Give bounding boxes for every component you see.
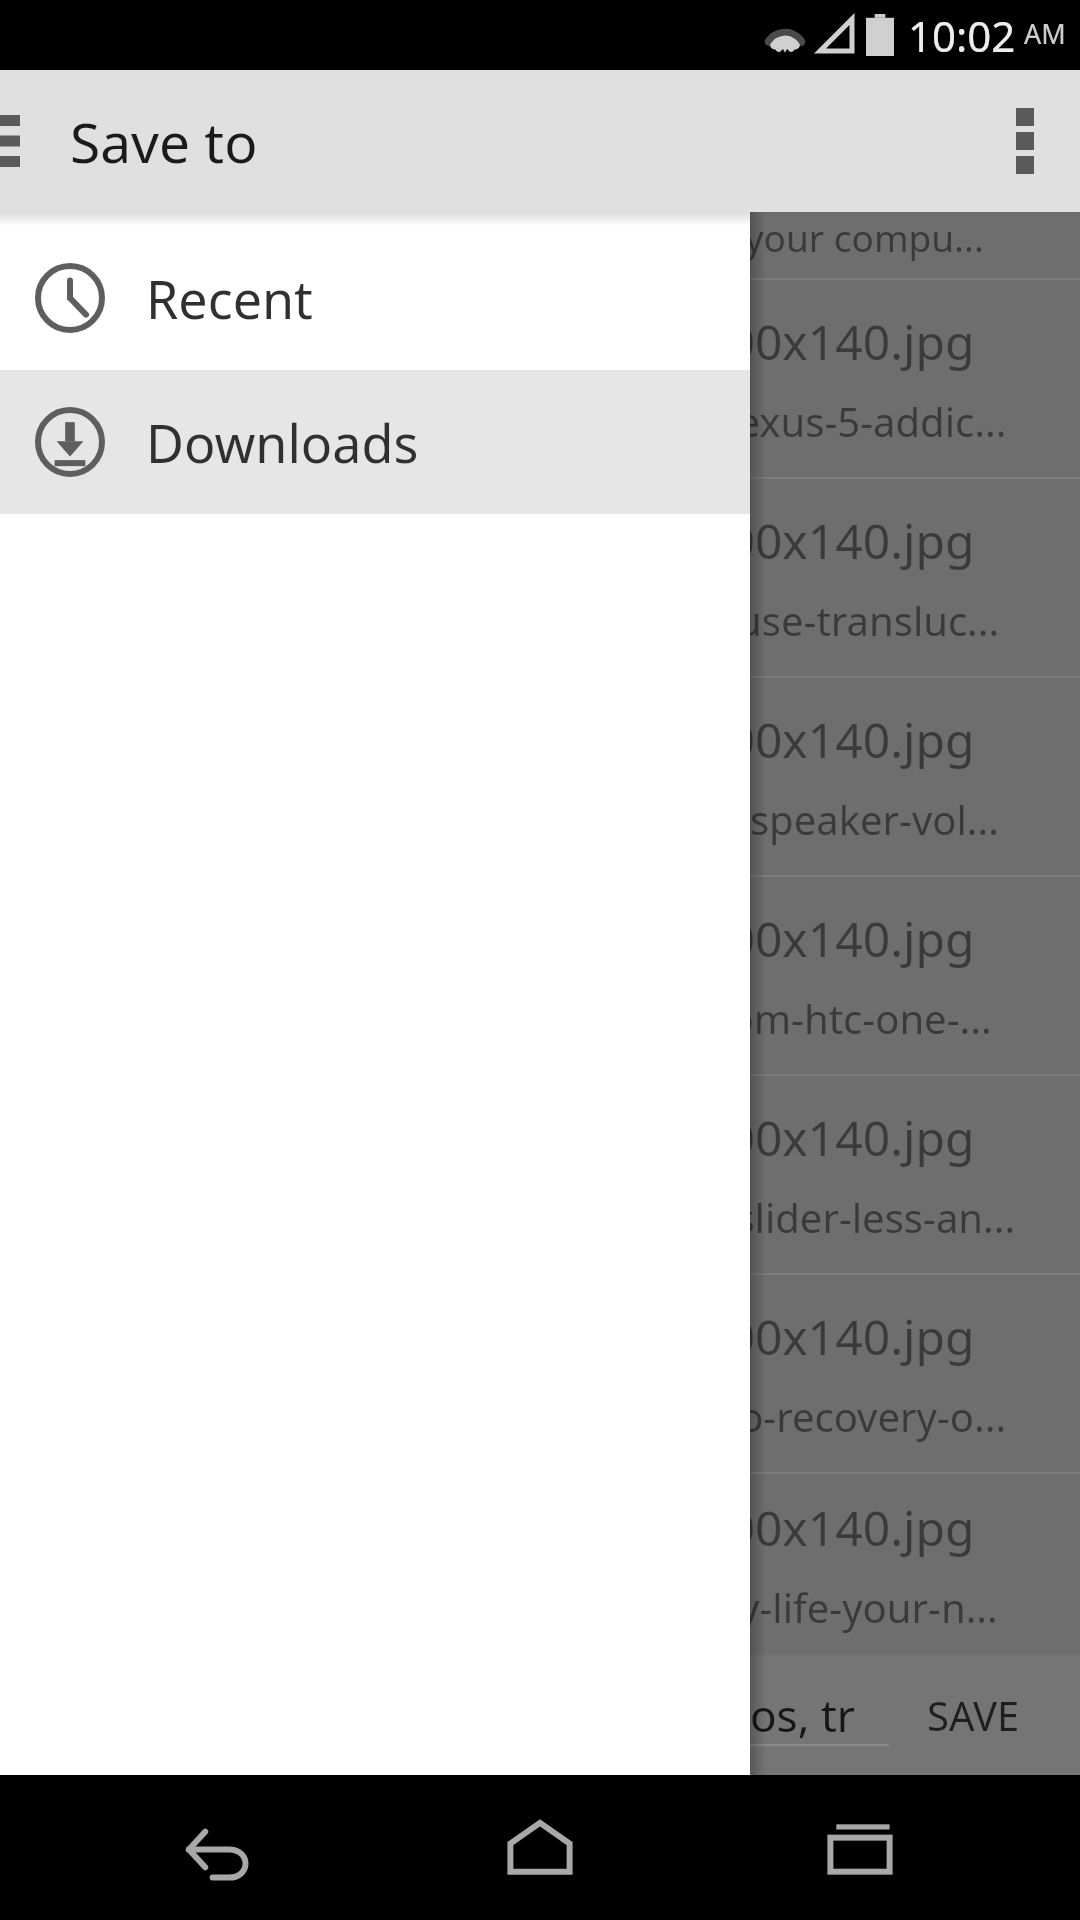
button[interactable]: Recent [0, 226, 750, 370]
staticText: o-use-transluc... [700, 593, 1000, 647]
button[interactable]: Downloads [0, 370, 750, 514]
button[interactable]: Open navigation drawer [0, 70, 42, 212]
staticText: 10:02 [908, 7, 1016, 64]
staticText: from-htc-one-... [700, 991, 992, 1045]
staticText: -nexus-5-addic... [700, 394, 1007, 448]
button[interactable]: Home [440, 1775, 640, 1920]
button[interactable]: Recent apps [760, 1775, 960, 1920]
staticText: 300x140.jpg [700, 707, 975, 772]
button[interactable]: SAVE [907, 1670, 1040, 1760]
staticText: SAVE [927, 1688, 1020, 1742]
button[interactable]: More options [970, 70, 1080, 212]
staticText: os, tr [750, 1685, 855, 1745]
staticText: Downloads [146, 407, 419, 478]
button[interactable]: 300x140.jpg [0, 280, 1080, 477]
button[interactable]: 300x140.jpg [0, 479, 1080, 676]
staticText: nto-recovery-o... [700, 1389, 1007, 1443]
staticText: of your compu... [700, 212, 984, 262]
button[interactable]: 300x140.jpg [0, 1474, 1080, 1655]
staticText: 300x140.jpg [700, 1304, 975, 1369]
staticText: ery-life-your-n... [700, 1580, 998, 1634]
staticText: e-slider-less-an... [700, 1190, 1016, 1244]
staticText: 300x140.jpg [700, 1105, 975, 1170]
button[interactable]: 300x140.jpg [0, 678, 1080, 875]
staticText: 300x140.jpg [700, 906, 975, 971]
staticText: 300x140.jpg [700, 309, 975, 374]
staticText: Recent [146, 263, 313, 334]
staticText: AM [1024, 15, 1066, 52]
button[interactable]: 300x140.jpg [0, 877, 1080, 1074]
button[interactable]: 300x140.jpg [0, 1076, 1080, 1273]
button[interactable]: 300x140.jpg [0, 1275, 1080, 1472]
staticText: 300x140.jpg [700, 1495, 975, 1560]
staticText: 300x140.jpg [700, 508, 975, 573]
staticText: Save to [70, 104, 258, 179]
staticText: et-speaker-vol... [700, 792, 999, 846]
button[interactable]: Back [120, 1775, 320, 1920]
